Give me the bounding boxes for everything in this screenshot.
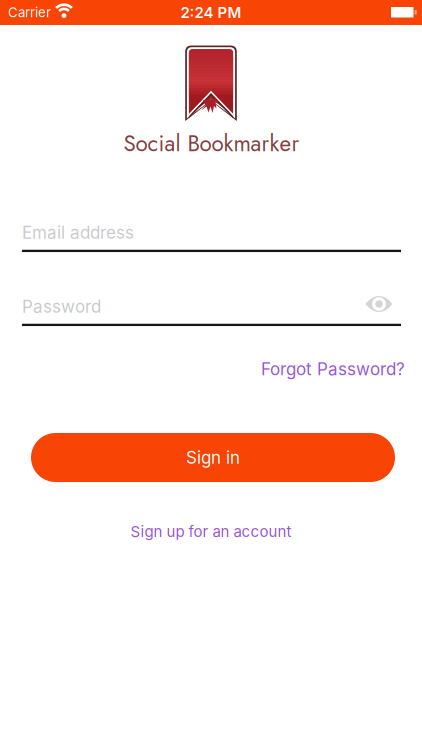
staticText: Carrier [8, 4, 51, 20]
staticText: Sign in [186, 447, 240, 468]
button[interactable]: Password [0, 286, 422, 326]
staticText: Password [22, 296, 101, 317]
button[interactable]: Show password [362, 291, 396, 317]
button[interactable]: Forgot Password? [261, 359, 405, 379]
staticText: Sign up for an account [130, 522, 291, 540]
staticText: Social Bookmarker [123, 127, 299, 160]
staticText: Email address [22, 222, 134, 243]
staticText: Forgot Password? [261, 359, 405, 379]
staticText: 2:24 PM [180, 3, 241, 21]
button[interactable]: Sign up for an account [130, 522, 291, 540]
button[interactable]: Email address [0, 212, 422, 252]
button[interactable]: Sign in [31, 433, 395, 482]
